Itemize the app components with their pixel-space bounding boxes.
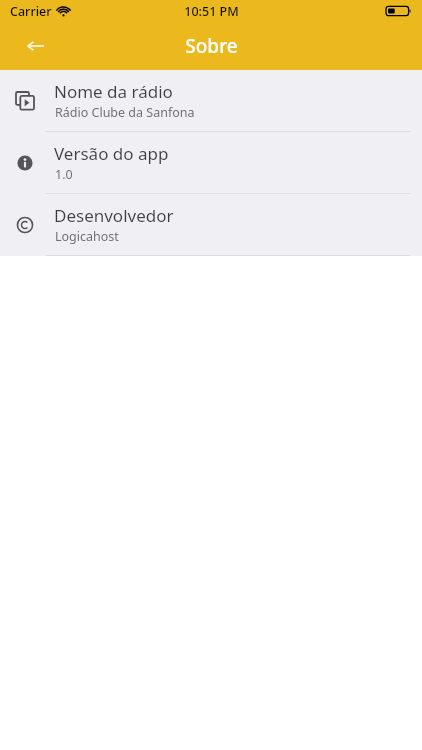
staticText: Desenvolvedor [54,204,174,227]
button[interactable]: Desenvolvedor [0,194,422,255]
staticText: Sobre [185,33,238,59]
button[interactable]: Back [15,26,55,66]
button[interactable]: Versão do app [0,132,422,193]
staticText: Versão do app [54,142,169,165]
staticText: Nome da rádio [54,80,173,103]
staticText: 1.0 [55,166,73,183]
staticText: Rádio Clube da Sanfona [55,104,195,121]
staticText: 10:51 PM [184,3,239,20]
staticText: Logicahost [55,228,119,245]
button[interactable]: Nome da rádio [0,70,422,131]
staticText: Carrier [10,3,52,20]
